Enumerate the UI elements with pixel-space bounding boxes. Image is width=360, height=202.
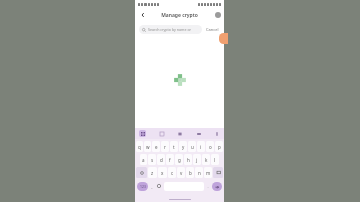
button[interactable]: Shift <box>136 167 147 178</box>
staticText: b <box>189 170 192 176</box>
button[interactable]: x <box>158 167 167 178</box>
staticText: f <box>169 157 171 163</box>
button[interactable]: , <box>150 184 154 189</box>
staticText: w <box>146 144 150 150</box>
button[interactable]: Clipboard <box>195 130 202 137</box>
button[interactable]: . <box>206 184 210 189</box>
button[interactable]: Enter <box>212 182 222 191</box>
staticText: y <box>182 144 185 150</box>
button[interactable]: Gif <box>176 130 183 137</box>
button[interactable]: f <box>166 154 174 165</box>
staticText: r <box>164 144 166 150</box>
staticText: g <box>178 157 181 163</box>
button[interactable]: h <box>184 154 192 165</box>
button[interactable]: n <box>195 167 203 178</box>
staticText: Cancel <box>206 27 219 32</box>
button[interactable]: c <box>168 167 176 178</box>
staticText: a <box>142 157 145 163</box>
button[interactable]: p <box>215 141 223 152</box>
button[interactable]: u <box>188 141 196 152</box>
button[interactable]: t <box>170 141 178 152</box>
staticText: c <box>171 170 174 176</box>
button[interactable]: i <box>197 141 205 152</box>
staticText: s <box>151 157 154 163</box>
staticText: Manage crypto <box>161 12 198 19</box>
button[interactable]: l <box>211 154 219 165</box>
button[interactable]: v <box>177 167 185 178</box>
button[interactable]: Profile <box>215 12 221 18</box>
button[interactable]: z <box>148 167 157 178</box>
button[interactable]: Cancel <box>205 26 220 33</box>
button[interactable]: Settings <box>213 130 220 137</box>
staticText: j <box>196 157 198 163</box>
staticText: m <box>206 170 211 176</box>
button[interactable]: s <box>148 154 156 165</box>
staticText: n <box>198 170 201 176</box>
staticText: p <box>218 144 221 150</box>
button[interactable]: Backspace <box>213 167 223 178</box>
staticText: i <box>200 144 202 150</box>
button[interactable]: w <box>144 141 151 152</box>
button[interactable]: Emoji <box>156 183 162 189</box>
button[interactable]: e <box>152 141 160 152</box>
button[interactable]: d <box>157 154 165 165</box>
button[interactable]: Search crypto by name or symbol <box>139 25 202 34</box>
button[interactable]: o <box>206 141 214 152</box>
staticText: o <box>209 144 212 150</box>
staticText: e <box>155 144 158 150</box>
staticText: z <box>151 170 154 176</box>
button[interactable]: j <box>193 154 201 165</box>
staticText: l <box>214 157 216 163</box>
button[interactable]: y <box>179 141 187 152</box>
staticText: d <box>160 157 163 163</box>
staticText: Search crypto by name or symbol <box>148 27 199 32</box>
button[interactable]: r <box>161 141 169 152</box>
button[interactable]: 123 <box>137 182 148 191</box>
staticText: t <box>173 144 175 150</box>
button[interactable]: b <box>186 167 194 178</box>
button[interactable]: k <box>202 154 210 165</box>
button[interactable]: a <box>140 154 147 165</box>
staticText: x <box>161 170 164 176</box>
staticText: 123 <box>140 184 146 189</box>
button[interactable]: q <box>136 141 143 152</box>
staticText: q <box>138 144 141 150</box>
button[interactable]: g <box>175 154 183 165</box>
button[interactable]: m <box>204 167 212 178</box>
button[interactable]: Stickers <box>158 130 165 137</box>
staticText: v <box>180 170 183 176</box>
button[interactable]: Back <box>138 10 148 20</box>
button[interactable]: Keyboard menu <box>139 130 146 137</box>
staticText: u <box>191 144 194 150</box>
staticText: h <box>187 157 190 163</box>
staticText: k <box>205 157 208 163</box>
